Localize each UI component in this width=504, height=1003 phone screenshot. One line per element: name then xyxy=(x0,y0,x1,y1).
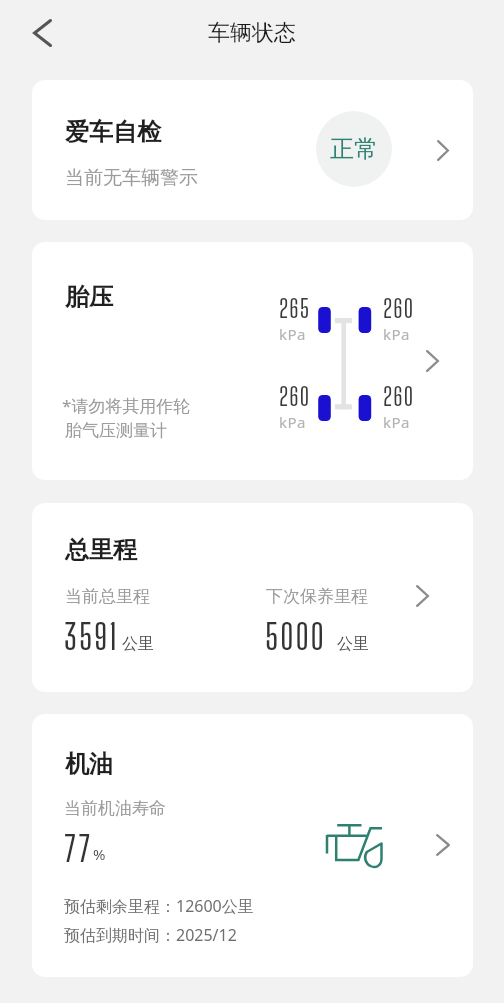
staticText: 爱车自检 xyxy=(65,117,161,147)
staticText: 当前机油寿命 xyxy=(64,798,166,819)
button[interactable]: 总里程 xyxy=(32,503,473,692)
staticText: % xyxy=(93,844,106,864)
staticText: 当前总里程 xyxy=(65,586,150,607)
staticText: 机油 xyxy=(65,749,113,779)
staticText: 正常 xyxy=(330,134,378,164)
staticText: 公里 xyxy=(337,634,369,654)
staticText: 预估到期时间：2025/12 xyxy=(64,924,237,946)
staticText: 车辆状态 xyxy=(208,19,296,47)
button[interactable]: 机油 xyxy=(32,714,473,977)
staticText: 77 xyxy=(64,829,93,870)
staticText: 下次保养里程 xyxy=(266,586,368,607)
button[interactable]: Back xyxy=(20,11,64,55)
staticText: kPa xyxy=(279,412,306,432)
staticText: 260 xyxy=(383,294,415,323)
button[interactable]: 胎压 xyxy=(32,242,473,480)
staticText: 5000 xyxy=(265,617,326,658)
staticText: 胎气压测量计 xyxy=(65,420,167,441)
staticText: 预估剩余里程：12600公里 xyxy=(64,895,254,917)
staticText: 总里程 xyxy=(65,535,137,565)
button[interactable]: 爱车自检 xyxy=(32,80,473,220)
staticText: 当前无车辆警示 xyxy=(65,166,198,190)
staticText: 3591 xyxy=(64,617,119,658)
staticText: kPa xyxy=(383,324,410,344)
staticText: *请勿将其用作轮 xyxy=(62,394,191,417)
staticText: kPa xyxy=(279,324,306,344)
staticText: kPa xyxy=(383,412,410,432)
staticText: 260 xyxy=(279,382,311,411)
staticText: 胎压 xyxy=(65,282,113,312)
staticText: 公里 xyxy=(122,634,154,654)
staticText: 265 xyxy=(279,294,311,323)
staticText: 260 xyxy=(383,382,415,411)
